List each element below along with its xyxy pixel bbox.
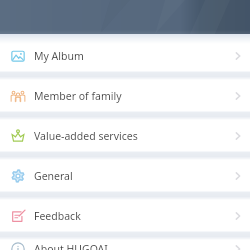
staticText: About HUGOAI <box>34 242 108 250</box>
staticText: My Album <box>34 49 84 63</box>
staticText: General <box>34 169 73 183</box>
staticText: Feedback <box>34 209 81 223</box>
button[interactable]: My Album <box>0 36 250 76</box>
staticText: Value-added services <box>34 129 138 143</box>
button[interactable]: Member of family <box>0 76 250 116</box>
button[interactable]: General <box>0 156 250 196</box>
staticText: Member of family <box>34 89 122 103</box>
button[interactable]: About HUGOAI <box>0 237 250 250</box>
button[interactable]: Value-added services <box>0 116 250 156</box>
button[interactable]: Feedback <box>0 196 250 235</box>
